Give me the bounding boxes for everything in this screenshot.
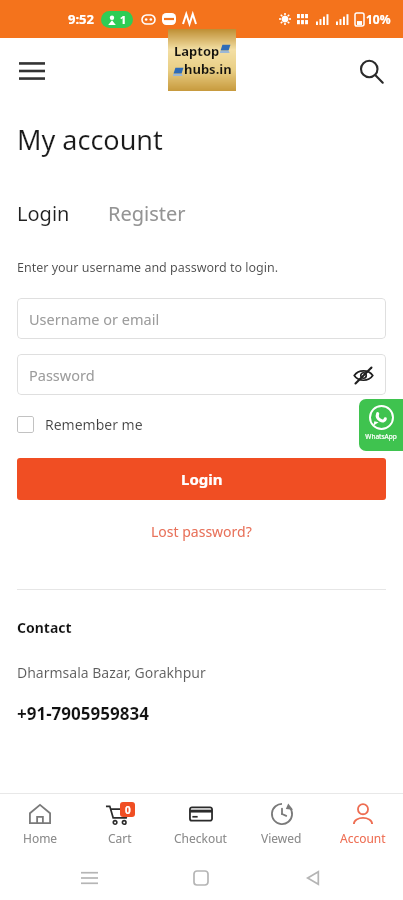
button[interactable]: Search: [349, 49, 393, 93]
button[interactable]: Laptop hubs.in logo: [168, 29, 236, 91]
staticText: Cart: [108, 830, 132, 846]
button[interactable]: 0: [80, 793, 160, 855]
staticText: My account: [17, 121, 163, 158]
staticText: Dharmsala Bazar, Gorakhpur: [17, 663, 206, 682]
button[interactable]: Account: [322, 793, 403, 855]
staticText: Login: [181, 469, 223, 489]
staticText: 1: [120, 12, 127, 27]
staticText: 9:52: [68, 10, 94, 28]
button[interactable]: Back: [291, 856, 335, 900]
button[interactable]: Lost password?: [147, 518, 256, 545]
button[interactable]: Viewed: [241, 793, 322, 855]
button[interactable]: Checkout: [160, 793, 241, 855]
staticText: Remember me: [45, 415, 143, 434]
button[interactable]: Recents: [67, 856, 111, 900]
button[interactable]: Home: [0, 793, 80, 855]
staticText: Login: [17, 200, 70, 227]
staticText: 10%: [366, 11, 391, 27]
staticText: hubs.in: [184, 60, 232, 78]
staticText: WhatsApp: [365, 432, 397, 441]
staticText: Viewed: [261, 830, 302, 846]
staticText: Checkout: [174, 830, 227, 846]
button[interactable]: Home: [179, 856, 223, 900]
staticText: Username or email: [29, 309, 160, 329]
staticText: Lost password?: [151, 522, 252, 541]
staticText: Home: [23, 830, 58, 846]
staticText: Register: [108, 200, 186, 227]
staticText: Laptop: [174, 42, 220, 60]
staticText: Enter your username and password to logi…: [17, 259, 279, 276]
staticText: 0: [125, 803, 131, 817]
button[interactable]: Register: [108, 200, 190, 227]
button[interactable]: Username or email: [17, 298, 386, 339]
button[interactable]: Menu: [10, 49, 54, 93]
button[interactable]: Password: [17, 354, 386, 395]
button[interactable]: Login: [17, 200, 74, 227]
staticText: Account: [340, 830, 386, 846]
staticText: Password: [29, 365, 95, 385]
staticText: +91-7905959834: [17, 702, 149, 725]
button[interactable]: Show password: [350, 362, 376, 388]
staticText: Contact: [17, 618, 72, 637]
button[interactable]: Remember me: [17, 415, 143, 434]
button[interactable]: WhatsApp: [359, 399, 403, 451]
button[interactable]: Login: [17, 458, 386, 500]
